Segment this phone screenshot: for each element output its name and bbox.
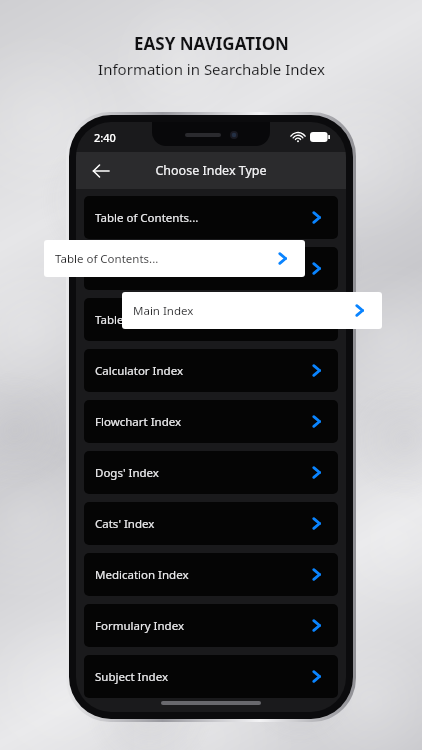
staticText: Subject Index — [95, 669, 169, 685]
staticText: Table of Contents... — [95, 210, 199, 226]
button[interactable]: Table In... — [84, 298, 338, 341]
button[interactable]: Table of Contents... — [84, 247, 338, 290]
staticText: EASY NAVIGATION — [134, 32, 289, 55]
button[interactable]: Formulary Index — [84, 604, 338, 647]
button[interactable]: Dogs' Index — [84, 451, 338, 494]
staticText: Choose Index Type — [155, 162, 267, 179]
button[interactable]: Flowchart Index — [84, 400, 338, 443]
staticText: Formulary Index — [95, 618, 184, 634]
button[interactable]: Cats' Index — [84, 502, 338, 545]
staticText: Table In... — [95, 312, 147, 328]
staticText: Medication Index — [95, 567, 189, 583]
staticText: Information in Searchable Index — [98, 59, 325, 79]
button[interactable]: Medication Index — [84, 553, 338, 596]
staticText: Main Index — [133, 303, 194, 319]
staticText: Table of Contents... — [55, 251, 159, 267]
button[interactable]: Subject Index — [84, 655, 338, 698]
staticText: Dogs' Index — [95, 465, 159, 481]
button[interactable]: Table of Contents... — [84, 196, 338, 239]
staticText: Cats' Index — [95, 516, 155, 532]
staticText: Calculator Index — [95, 363, 183, 379]
staticText: Flowchart Index — [95, 414, 182, 430]
button[interactable]: Main Index — [122, 292, 382, 329]
staticText: 2:40 — [94, 130, 116, 145]
button[interactable]: Back — [84, 154, 118, 188]
button[interactable]: Calculator Index — [84, 349, 338, 392]
button[interactable]: Table of Contents... — [44, 240, 305, 277]
staticText: Table of Contents... — [95, 261, 199, 277]
